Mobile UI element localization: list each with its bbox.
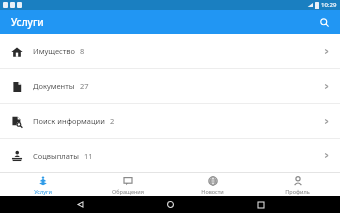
button[interactable]: Поиск информации <box>0 104 340 138</box>
button[interactable]: Search <box>314 12 334 32</box>
staticText: 10:29 <box>321 1 337 9</box>
staticText: 8 <box>80 46 85 56</box>
staticText: 27 <box>80 81 89 91</box>
button[interactable]: Имущество <box>0 34 340 68</box>
staticText: Обращения <box>112 188 144 195</box>
staticText: 11 <box>84 151 93 161</box>
button[interactable]: Back <box>69 196 91 213</box>
button[interactable]: Recents <box>250 196 272 213</box>
staticText: 2 <box>110 116 115 126</box>
staticText: Соцвыплаты <box>33 151 79 161</box>
staticText: Документы <box>33 81 75 91</box>
button[interactable]: Обращения <box>85 173 170 196</box>
button[interactable]: Новости <box>170 173 255 196</box>
button[interactable]: Профиль <box>255 173 340 196</box>
staticText: Услуги <box>11 15 44 29</box>
staticText: Услуги <box>34 188 52 195</box>
staticText: Имущество <box>33 46 75 56</box>
button[interactable]: Услуги <box>0 173 85 196</box>
button[interactable]: Home <box>159 196 181 213</box>
staticText: Новости <box>201 188 224 195</box>
button[interactable]: Соцвыплаты <box>0 139 340 172</box>
staticText: Поиск информации <box>33 116 105 126</box>
staticText: Профиль <box>285 188 310 195</box>
button[interactable]: Документы <box>0 69 340 103</box>
